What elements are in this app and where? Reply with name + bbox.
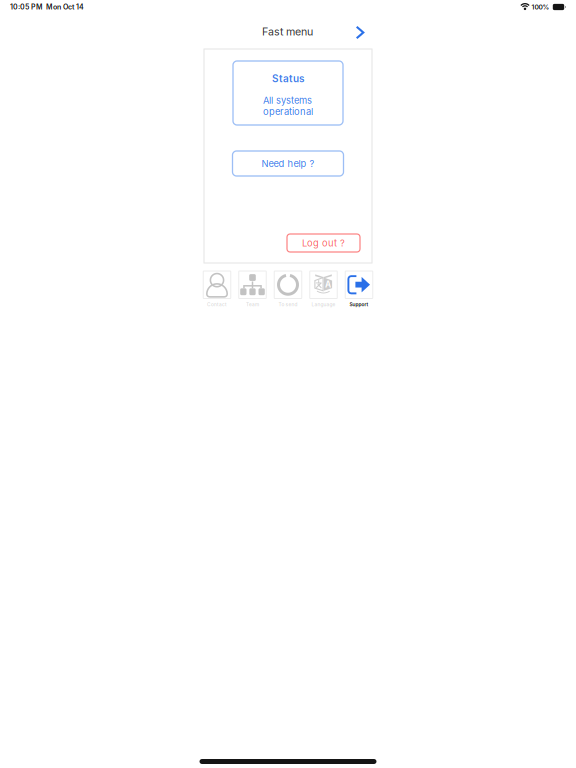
staticText: Status — [272, 73, 304, 85]
button[interactable]: Contact — [203, 271, 231, 309]
button[interactable]: Open menu — [353, 20, 367, 42]
staticText: All systems — [263, 95, 312, 106]
button[interactable]: To send — [274, 271, 302, 309]
button[interactable]: Team — [239, 271, 266, 309]
staticText: operational — [263, 106, 313, 117]
button[interactable]: Support — [345, 271, 373, 309]
staticText: 100% — [532, 3, 550, 11]
staticText: Mon Oct 14 — [46, 3, 84, 11]
staticText: Language — [311, 301, 335, 307]
staticText: Contact — [207, 301, 227, 307]
staticText: A — [325, 279, 331, 289]
staticText: To send — [278, 301, 297, 307]
button[interactable]: A — [310, 271, 337, 309]
staticText: Log out ? — [302, 237, 345, 249]
staticText: 10:05 PM — [10, 3, 43, 11]
button[interactable]: Need help ? — [232, 151, 343, 176]
staticText: Team — [246, 301, 259, 307]
staticText: Need help ? — [261, 158, 314, 169]
staticText: Fast menu — [262, 25, 313, 38]
staticText: Support — [349, 301, 368, 307]
button[interactable]: Log out ? — [287, 234, 360, 252]
